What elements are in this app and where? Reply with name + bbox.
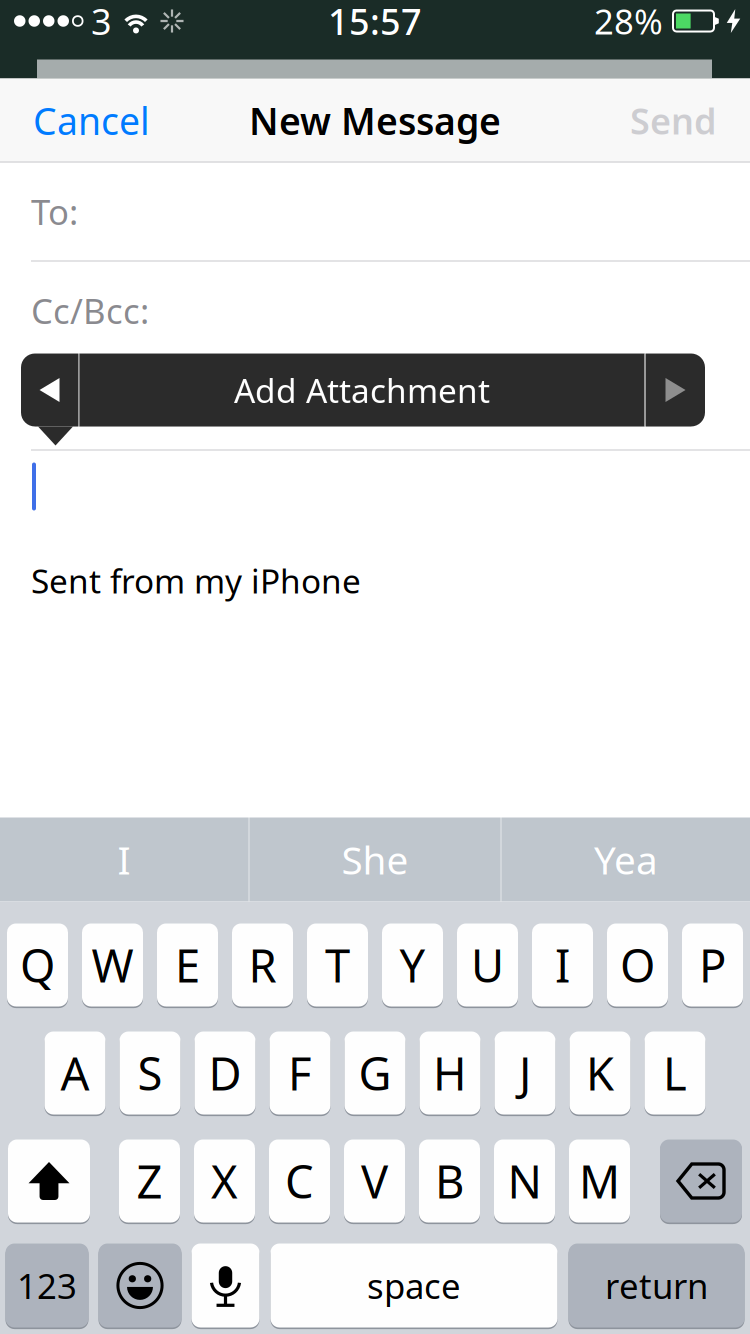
staticText: X bbox=[211, 1151, 238, 1211]
button[interactable]: K bbox=[569, 1031, 630, 1114]
button[interactable]: Q bbox=[7, 923, 68, 1006]
staticText: return bbox=[605, 1262, 708, 1308]
staticText: I bbox=[117, 834, 130, 885]
staticText: New Message bbox=[249, 96, 501, 145]
button[interactable]: N bbox=[494, 1139, 555, 1222]
staticText: 3 bbox=[91, 0, 112, 45]
button[interactable]: W bbox=[82, 923, 143, 1006]
button[interactable]: G bbox=[344, 1031, 405, 1114]
staticText: C bbox=[285, 1151, 314, 1211]
button[interactable]: F bbox=[269, 1031, 330, 1114]
button[interactable]: B bbox=[419, 1139, 480, 1222]
button[interactable]: T bbox=[307, 923, 368, 1006]
staticText: P bbox=[699, 935, 726, 995]
staticText: Yea bbox=[594, 834, 658, 885]
button[interactable]: L bbox=[644, 1031, 705, 1114]
staticText: 28% bbox=[594, 0, 663, 44]
staticText: K bbox=[586, 1043, 614, 1103]
staticText: 123 bbox=[17, 1262, 77, 1308]
button[interactable]: Previous bbox=[21, 353, 78, 426]
button[interactable]: Z bbox=[119, 1139, 180, 1222]
staticText: U bbox=[471, 935, 504, 995]
button[interactable]: To: bbox=[0, 162, 750, 260]
staticText: Cancel bbox=[33, 96, 150, 145]
staticText: G bbox=[358, 1043, 391, 1103]
staticText: Cc/Bcc: bbox=[31, 287, 149, 333]
staticText: R bbox=[248, 935, 276, 995]
staticText: I bbox=[555, 935, 570, 995]
button[interactable]: Dictate bbox=[191, 1243, 259, 1327]
button[interactable]: D bbox=[194, 1031, 255, 1114]
staticText: Q bbox=[20, 935, 55, 995]
staticText: M bbox=[579, 1151, 620, 1211]
button[interactable]: Add Attachment bbox=[79, 353, 644, 426]
button[interactable]: Yea bbox=[502, 817, 750, 901]
button[interactable]: Emoji bbox=[98, 1243, 181, 1327]
staticText: D bbox=[208, 1043, 241, 1103]
staticText: To: bbox=[31, 188, 78, 234]
button[interactable]: C bbox=[269, 1139, 330, 1222]
button[interactable]: J bbox=[494, 1031, 555, 1114]
staticText: O bbox=[620, 935, 655, 995]
staticText: H bbox=[433, 1043, 467, 1103]
staticText: V bbox=[361, 1151, 388, 1211]
button[interactable]: Send bbox=[610, 78, 750, 162]
button[interactable]: S bbox=[119, 1031, 180, 1114]
button[interactable]: U bbox=[457, 923, 518, 1006]
staticText: Z bbox=[136, 1151, 162, 1211]
button[interactable]: Y bbox=[382, 923, 443, 1006]
staticText: E bbox=[175, 935, 200, 995]
button[interactable]: H bbox=[419, 1031, 480, 1114]
staticText: 15:57 bbox=[328, 0, 422, 45]
button[interactable]: I bbox=[0, 817, 248, 901]
button[interactable]: She bbox=[250, 817, 500, 901]
staticText: Sent from my iPhone bbox=[31, 558, 361, 603]
staticText: S bbox=[137, 1043, 162, 1103]
button[interactable]: space bbox=[270, 1243, 557, 1327]
staticText: Send bbox=[630, 97, 717, 144]
button[interactable]: A bbox=[44, 1031, 105, 1114]
staticText: Y bbox=[399, 935, 425, 995]
button[interactable]: Sent from my iPhone bbox=[0, 450, 750, 817]
staticText: Add Attachment bbox=[234, 368, 490, 412]
button[interactable]: Cancel bbox=[0, 78, 170, 162]
staticText: W bbox=[91, 935, 133, 995]
button[interactable]: V bbox=[344, 1139, 405, 1222]
staticText: A bbox=[60, 1043, 89, 1103]
staticText: B bbox=[435, 1151, 464, 1211]
staticText: F bbox=[288, 1043, 312, 1103]
button[interactable]: R bbox=[232, 923, 293, 1006]
button[interactable]: 123 bbox=[5, 1243, 88, 1327]
button[interactable]: Next bbox=[646, 353, 705, 426]
staticText: L bbox=[663, 1043, 687, 1103]
staticText: N bbox=[507, 1151, 541, 1211]
staticText: T bbox=[325, 935, 350, 995]
button[interactable]: I bbox=[532, 923, 593, 1006]
button[interactable]: Shift bbox=[8, 1139, 90, 1222]
staticText: space bbox=[367, 1262, 461, 1308]
button[interactable]: P bbox=[682, 923, 743, 1006]
button[interactable]: return bbox=[568, 1243, 744, 1327]
button[interactable]: X bbox=[194, 1139, 255, 1222]
button[interactable]: E bbox=[157, 923, 218, 1006]
button[interactable]: O bbox=[607, 923, 668, 1006]
button[interactable]: Cc/Bcc: bbox=[0, 261, 750, 359]
button[interactable]: M bbox=[569, 1139, 630, 1222]
staticText: She bbox=[341, 834, 408, 885]
staticText: J bbox=[519, 1043, 531, 1103]
button[interactable]: Delete bbox=[660, 1139, 742, 1222]
